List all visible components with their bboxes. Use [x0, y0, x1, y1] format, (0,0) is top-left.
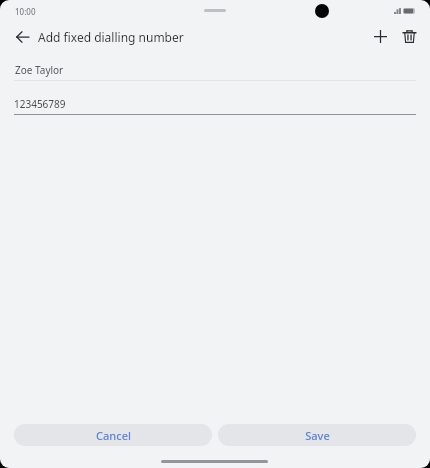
- button[interactable]: Zoe Taylor: [14, 58, 416, 81]
- button[interactable]: Cancel: [14, 424, 212, 446]
- button[interactable]: Add: [364, 22, 396, 51]
- button[interactable]: Save: [218, 424, 416, 446]
- staticText: Add fixed dialling number: [38, 29, 184, 45]
- staticText: Save: [305, 428, 330, 443]
- staticText: 10:00: [15, 6, 36, 17]
- button[interactable]: Delete: [393, 22, 425, 51]
- staticText: 123456789: [14, 97, 66, 111]
- button[interactable]: Back: [6, 22, 38, 51]
- staticText: Cancel: [96, 428, 131, 443]
- button[interactable]: 123456789: [14, 92, 416, 115]
- staticText: Zoe Taylor: [15, 63, 64, 77]
